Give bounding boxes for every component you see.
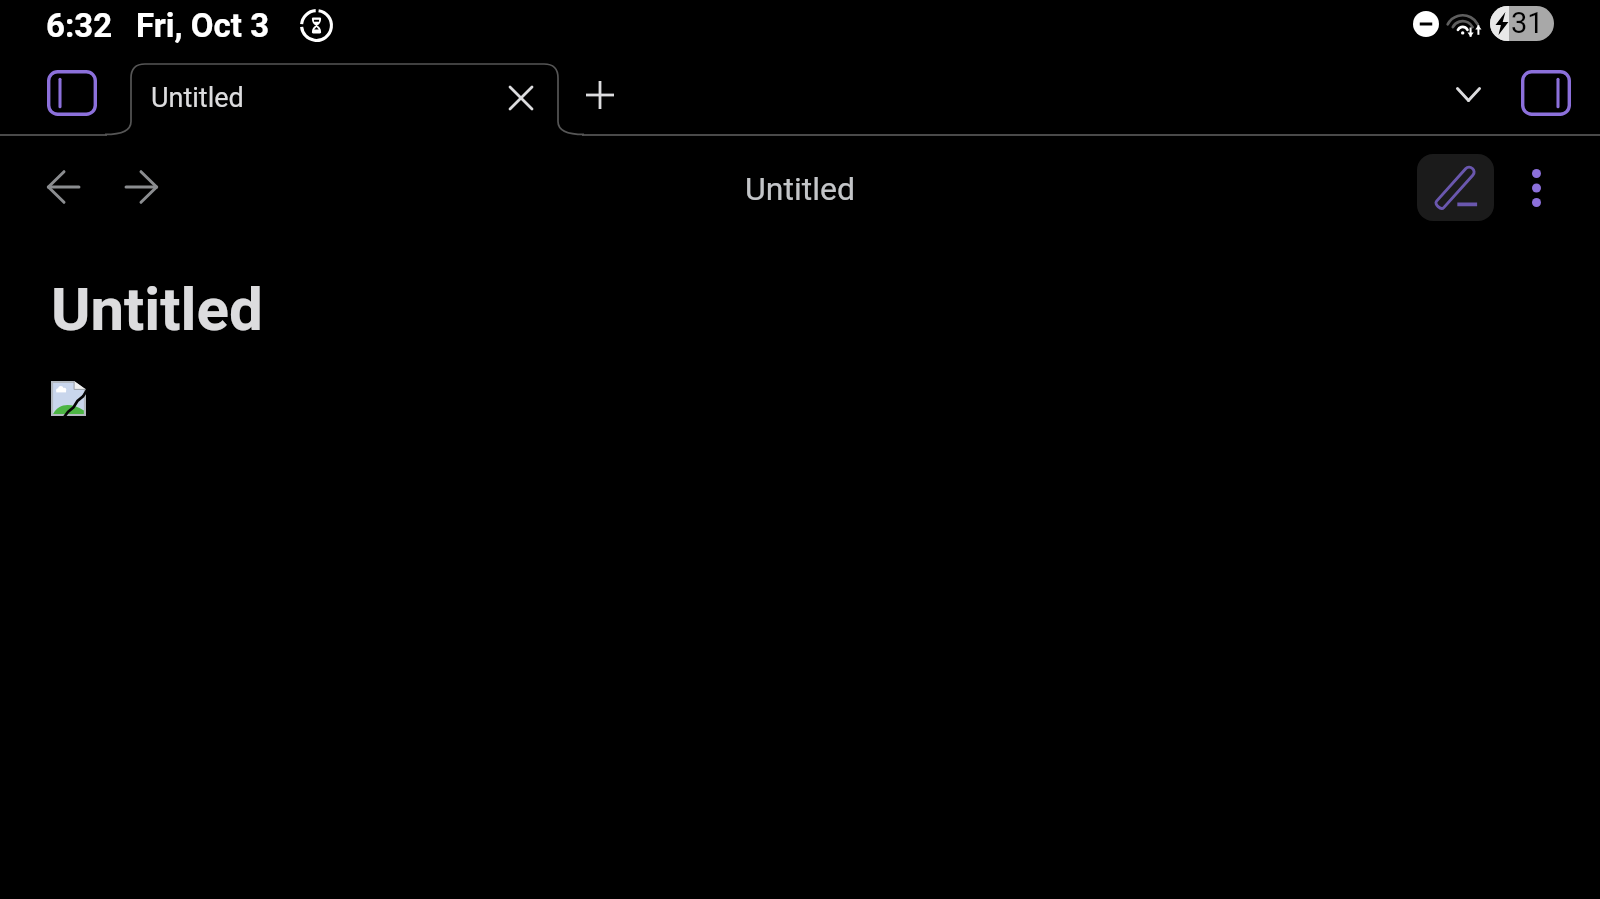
button[interactable]: Close tab [495, 72, 547, 124]
button[interactable]: Edit [1417, 154, 1494, 221]
button[interactable]: Forward [112, 158, 169, 215]
button[interactable]: More options [1508, 160, 1564, 216]
button[interactable]: Back [35, 158, 92, 215]
button[interactable]: Show side panel [1518, 67, 1574, 119]
button[interactable]: Show tabs sidebar [44, 67, 100, 119]
staticText: 31 [1511, 6, 1544, 40]
staticText: Untitled [51, 274, 263, 344]
staticText: 6:32 [46, 6, 113, 45]
staticText: Untitled [745, 170, 855, 208]
button[interactable]: Expand tab list [1442, 68, 1494, 120]
staticText: Fri, Oct 3 [136, 6, 270, 45]
button[interactable]: New tab [574, 69, 626, 121]
button[interactable]: Untitled [131, 64, 491, 135]
staticText: Untitled [151, 82, 244, 114]
